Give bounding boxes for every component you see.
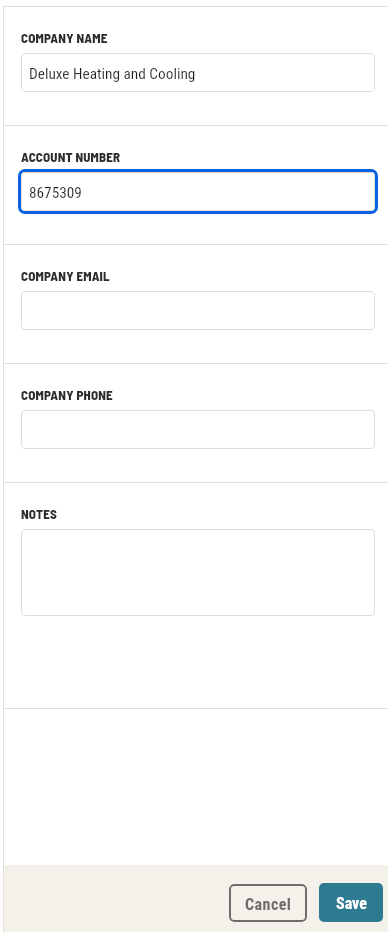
button[interactable]: 8675309: [21, 172, 375, 211]
button[interactable]: [21, 291, 375, 330]
staticText: Deluxe Heating and Cooling: [29, 65, 196, 83]
staticText: NOTES: [21, 506, 58, 522]
staticText: COMPANY EMAIL: [21, 268, 110, 284]
button[interactable]: [21, 529, 375, 616]
button[interactable]: [21, 410, 375, 449]
staticText: Save: [336, 894, 367, 913]
staticText: 8675309: [29, 184, 82, 202]
staticText: COMPANY PHONE: [21, 387, 113, 403]
staticText: ACCOUNT NUMBER: [21, 149, 121, 165]
button[interactable]: Deluxe Heating and Cooling: [21, 53, 375, 92]
button[interactable]: Save: [319, 883, 383, 922]
staticText: COMPANY NAME: [21, 30, 108, 46]
button[interactable]: Cancel: [229, 884, 307, 922]
staticText: Cancel: [245, 895, 292, 914]
